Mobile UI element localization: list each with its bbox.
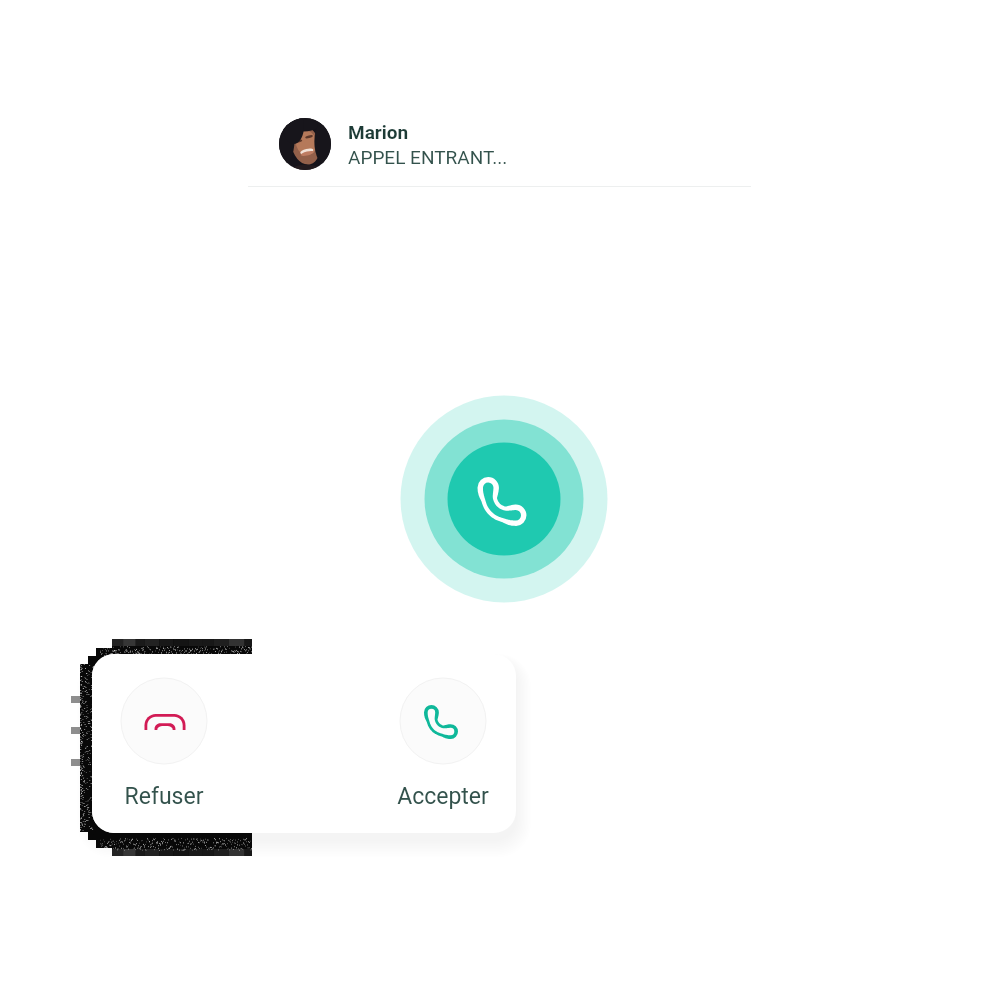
staticText: APPEL ENTRANT... xyxy=(348,146,508,168)
staticText: Refuser xyxy=(58,783,270,810)
staticText: Accepter xyxy=(337,783,549,810)
button[interactable]: Refuser xyxy=(92,654,304,833)
staticText: Marion xyxy=(348,121,409,143)
button[interactable]: Accepter xyxy=(304,654,516,833)
button[interactable]: Marion xyxy=(279,109,751,179)
